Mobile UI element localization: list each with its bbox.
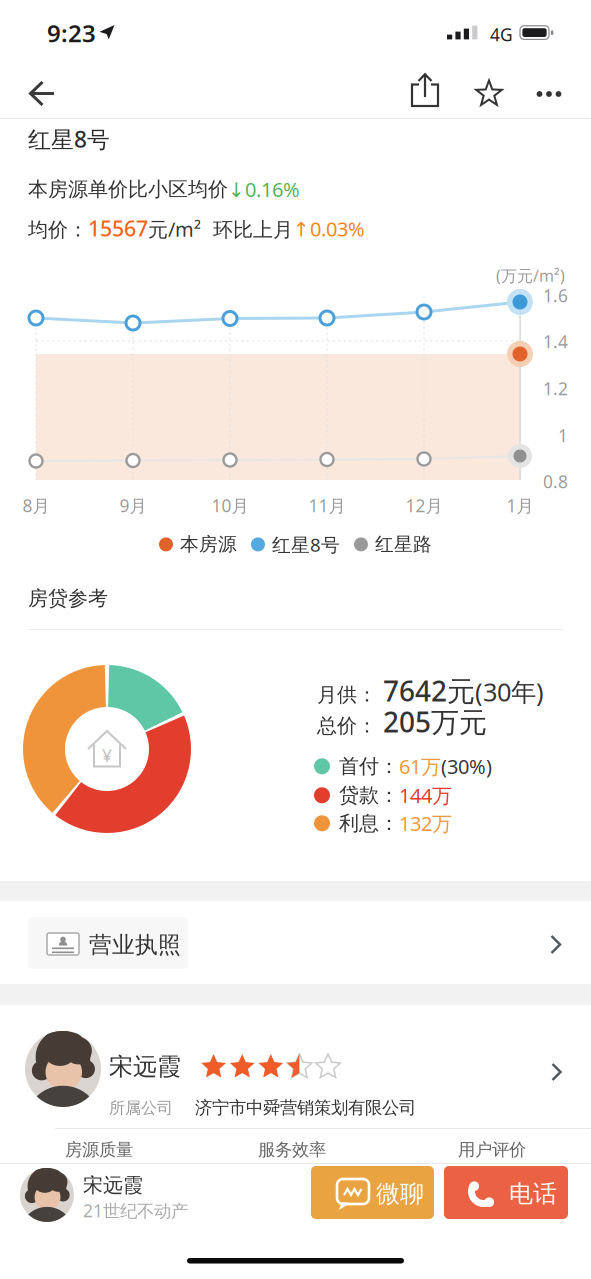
staticText: 微聊 <box>376 1179 424 1208</box>
staticText: 12月 <box>405 494 442 517</box>
button[interactable]: More <box>527 72 571 116</box>
button[interactable]: 房源质量 <box>65 1139 133 1160</box>
staticText: 济宁市中舜营销策划有限公司 <box>195 1097 416 1118</box>
staticText: ↓0.16% <box>228 176 300 203</box>
staticText: 132万 <box>399 810 452 837</box>
staticText: 1 <box>558 424 568 447</box>
staticText: 贷款： <box>339 783 399 808</box>
staticText: 4G <box>490 23 513 46</box>
staticText: (30%) <box>441 753 492 780</box>
staticText: 1.4 <box>543 330 568 353</box>
staticText: 红星8号 <box>272 532 340 557</box>
staticText: ¥ <box>102 744 112 767</box>
staticText: 用户评价 <box>458 1139 526 1160</box>
staticText: 10月 <box>211 494 248 517</box>
staticText: 环比上月 <box>201 217 293 242</box>
staticText: (30年) <box>475 675 544 708</box>
staticText: 8月 <box>22 494 49 517</box>
button[interactable]: Favorite <box>467 72 511 116</box>
staticText: 0.8 <box>543 470 568 493</box>
staticText: 宋远霞 <box>109 1052 181 1081</box>
staticText: 电话 <box>509 1179 557 1208</box>
staticText: 144万 <box>399 782 452 809</box>
staticText: 房源质量 <box>65 1139 133 1160</box>
staticText: 营业执照 <box>89 931 181 959</box>
staticText: 月供： <box>317 682 383 707</box>
button[interactable]: 微聊 <box>311 1166 434 1219</box>
staticText: 红星路 <box>375 533 432 556</box>
staticText: 7642元 <box>383 672 475 709</box>
button[interactable]: 营业执照 <box>0 901 591 984</box>
staticText: 本房源单价比小区均价 <box>28 177 228 202</box>
staticText: 61万 <box>399 753 441 780</box>
staticText: 利息： <box>339 811 399 836</box>
staticText: ↑0.03% <box>293 215 365 242</box>
staticText: 首付： <box>339 754 399 779</box>
staticText: 均价： <box>28 217 88 242</box>
staticText: 9:23 <box>47 17 96 49</box>
staticText: 所属公司 <box>109 1098 173 1118</box>
staticText: (万元/m²) <box>496 265 565 286</box>
staticText: 15567 <box>88 214 148 242</box>
button[interactable]: 宋远霞 <box>0 1005 591 1128</box>
staticText: 服务效率 <box>258 1139 326 1160</box>
button[interactable]: Back <box>16 72 68 116</box>
button[interactable]: 用户评价 <box>458 1139 526 1160</box>
staticText: 21世纪不动产 <box>83 1199 188 1222</box>
staticText: 11月 <box>308 494 345 517</box>
staticText: 红星8号 <box>28 124 110 154</box>
staticText: 宋远霞 <box>83 1173 143 1198</box>
staticText: 205万元 <box>383 703 487 740</box>
staticText: 1月 <box>506 494 533 517</box>
staticText: 总价： <box>317 713 383 738</box>
button[interactable]: 宋远霞 <box>20 1168 290 1224</box>
staticText: 元/m² <box>148 216 201 242</box>
staticText: 房贷参考 <box>28 586 108 611</box>
button[interactable]: 电话 <box>444 1166 568 1219</box>
staticText: 1.6 <box>543 284 568 307</box>
button[interactable]: Share <box>403 72 447 116</box>
staticText: 1.2 <box>543 377 568 400</box>
button[interactable]: 服务效率 <box>258 1139 326 1160</box>
staticText: 9月 <box>119 494 146 517</box>
staticText: 本房源 <box>180 533 237 556</box>
